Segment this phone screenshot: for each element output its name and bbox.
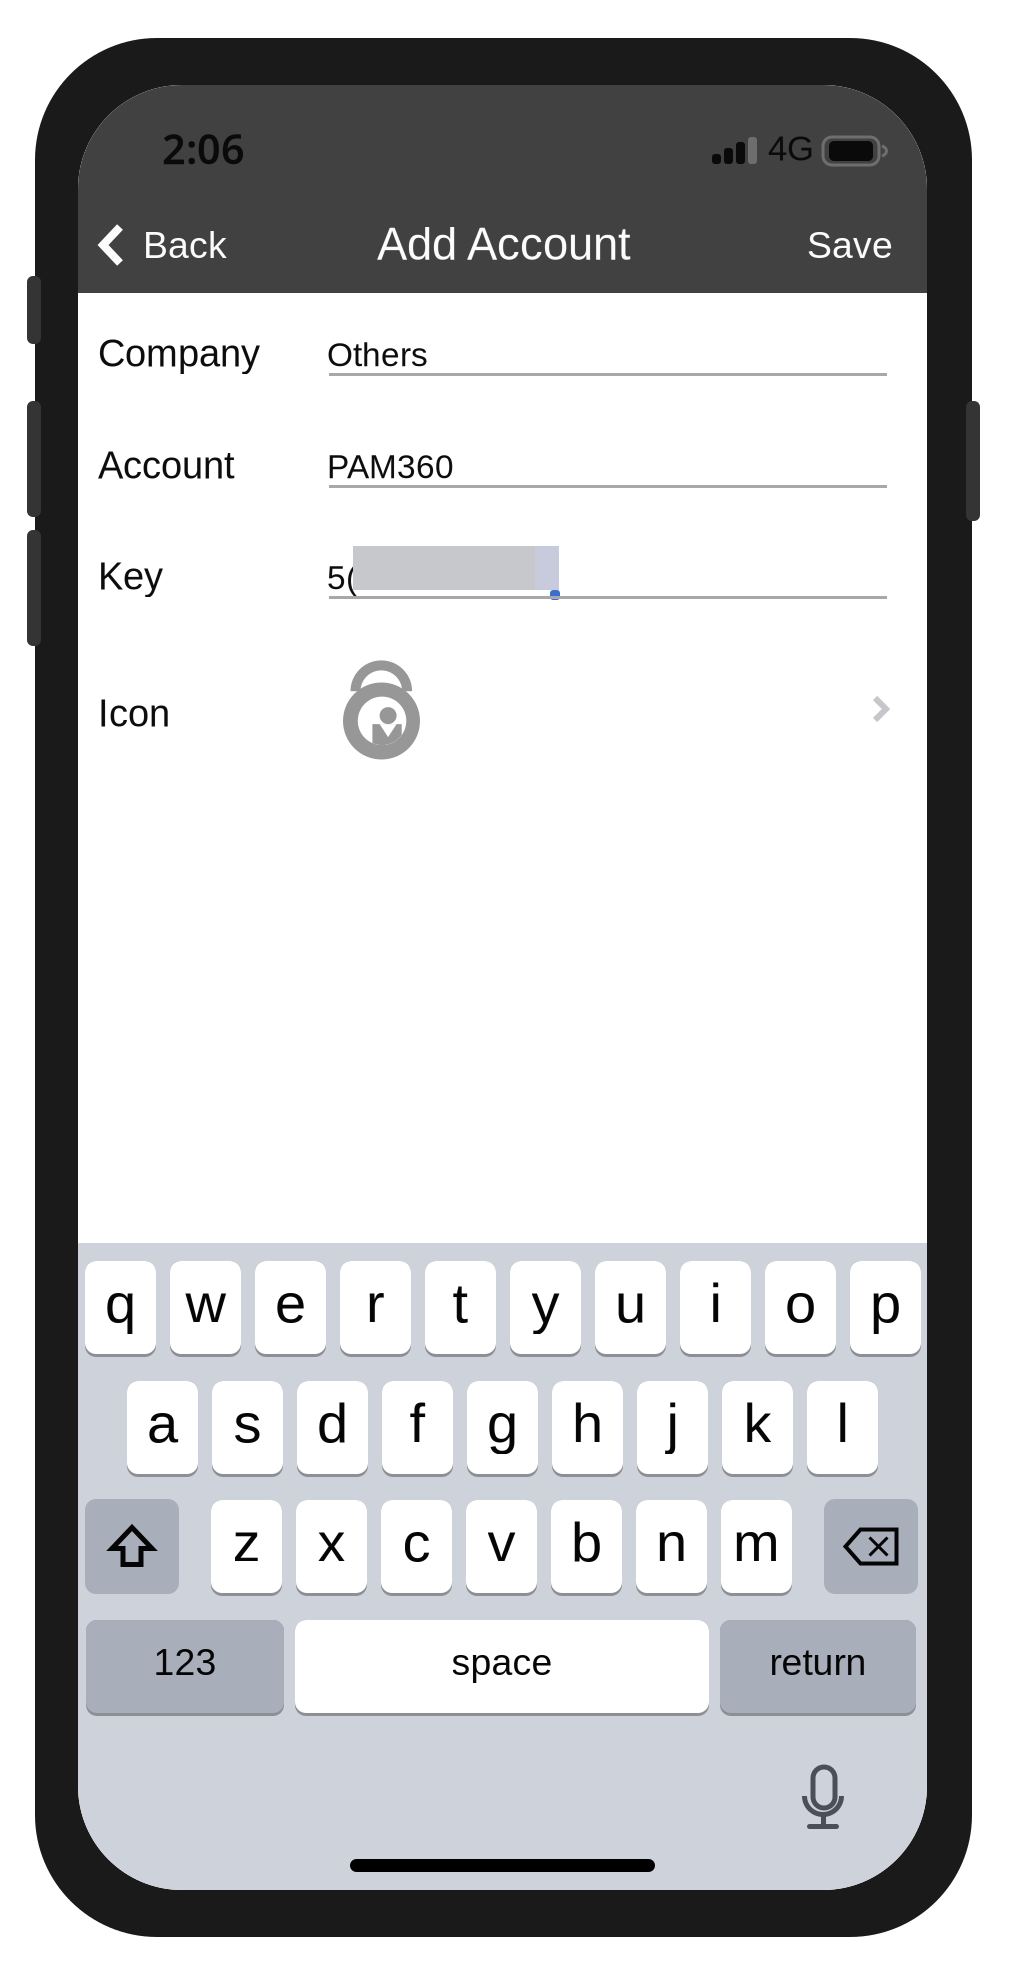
staticText: k (743, 1392, 771, 1454)
button[interactable]: h (552, 1381, 623, 1477)
staticText: 4G (768, 129, 814, 168)
staticText: Company (98, 332, 260, 374)
button[interactable]: return (720, 1620, 916, 1716)
staticText: x (317, 1511, 345, 1573)
button[interactable]: r (340, 1261, 411, 1357)
button[interactable]: y (510, 1261, 581, 1357)
staticText: q (105, 1272, 136, 1334)
button[interactable]: m (721, 1500, 792, 1596)
button[interactable]: a (127, 1381, 198, 1477)
staticText: i (709, 1272, 721, 1334)
button[interactable]: Save (771, 203, 893, 287)
staticText: j (666, 1392, 678, 1454)
button[interactable]: c (381, 1500, 452, 1596)
button[interactable]: t (425, 1261, 496, 1357)
button[interactable]: s (212, 1381, 283, 1477)
staticText: 123 (153, 1641, 216, 1683)
button[interactable]: e (255, 1261, 326, 1357)
button[interactable]: space (295, 1620, 709, 1716)
staticText: Others (327, 336, 428, 373)
staticText: u (615, 1272, 646, 1334)
button[interactable]: v (466, 1500, 537, 1596)
staticText: y (531, 1272, 559, 1334)
staticText: n (656, 1511, 687, 1573)
button[interactable]: z (211, 1500, 282, 1596)
staticText: c (402, 1511, 430, 1573)
button[interactable]: Shift (85, 1499, 179, 1594)
staticText: 5( (327, 559, 357, 596)
staticText: Account (98, 444, 235, 486)
staticText: h (572, 1392, 603, 1454)
staticText: Add Account (377, 219, 631, 269)
staticText: Key (98, 555, 163, 597)
staticText: f (409, 1392, 425, 1454)
staticText: g (487, 1392, 518, 1454)
button[interactable]: u (595, 1261, 666, 1357)
button[interactable]: Delete (824, 1499, 918, 1594)
button[interactable]: k (722, 1381, 793, 1477)
staticText: r (366, 1272, 385, 1334)
staticText: e (275, 1272, 306, 1334)
staticText: Back (143, 224, 227, 266)
button[interactable]: j (637, 1381, 708, 1477)
staticText: Icon (98, 692, 170, 734)
button[interactable]: q (85, 1261, 156, 1357)
staticText: b (571, 1511, 602, 1573)
staticText: p (870, 1272, 901, 1334)
button[interactable]: x (296, 1500, 367, 1596)
staticText: 2:06 (162, 120, 245, 176)
staticText: s (233, 1392, 261, 1454)
button[interactable]: l (807, 1381, 878, 1477)
staticText: a (147, 1392, 178, 1454)
button[interactable]: Dictation (802, 1767, 844, 1830)
staticText: m (733, 1511, 780, 1573)
staticText: z (232, 1511, 260, 1573)
button[interactable]: o (765, 1261, 836, 1357)
staticText: v (487, 1511, 515, 1573)
staticText: d (317, 1392, 348, 1454)
staticText: o (785, 1272, 816, 1334)
button[interactable]: 123 (86, 1620, 284, 1716)
staticText: PAM360 (327, 448, 454, 485)
staticText: space (451, 1641, 552, 1683)
button[interactable]: Icon (78, 645, 927, 765)
staticText: l (836, 1392, 848, 1454)
button[interactable]: Back (86, 203, 245, 287)
button[interactable]: n (636, 1500, 707, 1596)
button[interactable]: g (467, 1381, 538, 1477)
button[interactable]: f (382, 1381, 453, 1477)
button[interactable]: p (850, 1261, 921, 1357)
button[interactable]: b (551, 1500, 622, 1596)
staticText: return (769, 1641, 866, 1683)
button[interactable]: d (297, 1381, 368, 1477)
button[interactable]: w (170, 1261, 241, 1357)
staticText: t (452, 1272, 468, 1334)
button[interactable]: i (680, 1261, 751, 1357)
staticText: Save (807, 224, 893, 266)
staticText: w (185, 1272, 225, 1334)
